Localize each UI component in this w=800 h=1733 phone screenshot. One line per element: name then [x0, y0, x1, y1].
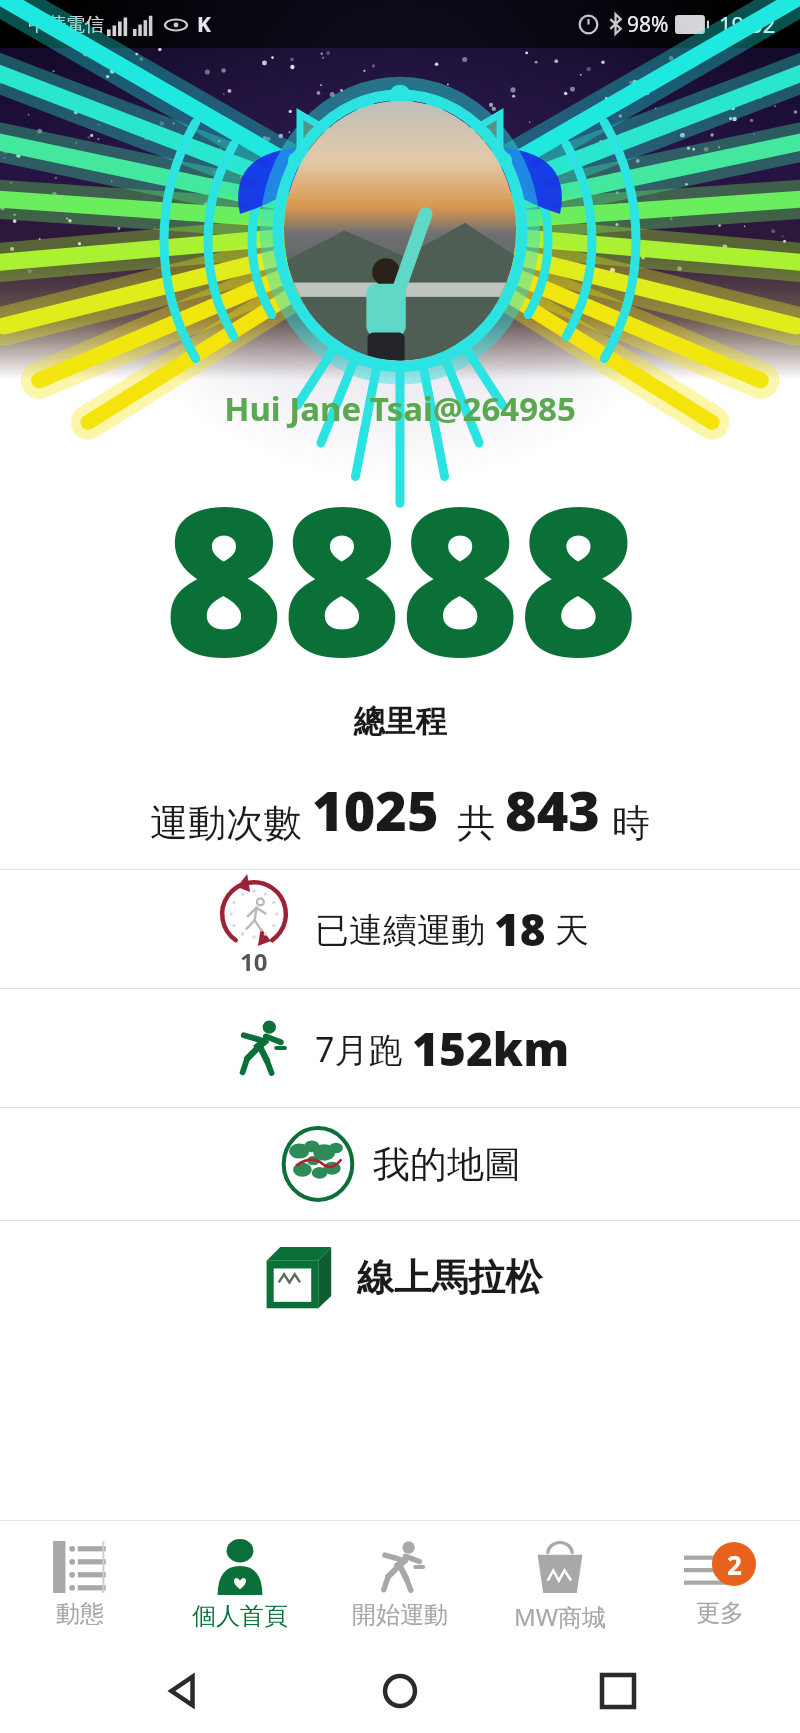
button[interactable]: Profile banner [0, 48, 800, 380]
staticText: K [197, 10, 211, 39]
staticText: 98% [627, 10, 669, 39]
staticText: 10 [240, 945, 268, 978]
staticText: 總里程 [0, 702, 800, 741]
staticText: 7月跑 [315, 1026, 412, 1072]
staticText: 2 [727, 1547, 742, 1582]
button[interactable]: 線上馬拉松 [0, 1221, 800, 1333]
button[interactable]: 2 [640, 1521, 800, 1649]
staticText: 18 [494, 899, 546, 959]
staticText: 天 [546, 906, 589, 952]
button[interactable]: 動態 [0, 1521, 160, 1649]
staticText: 時 [612, 799, 650, 847]
staticText: 19:52 [719, 9, 776, 39]
staticText: 152km [412, 1017, 570, 1080]
staticText: 開始運動 [352, 1600, 448, 1630]
button[interactable]: 開始運動 [320, 1521, 480, 1649]
button[interactable]: 10 [0, 870, 800, 988]
button[interactable]: Home [365, 1656, 435, 1726]
staticText: 8888 [0, 437, 800, 716]
staticText: 動態 [56, 1599, 104, 1629]
staticText: MW商城 [514, 1600, 607, 1633]
button[interactable]: 個人首頁 [160, 1521, 320, 1649]
staticText: 線上馬拉松 [357, 1254, 542, 1301]
button[interactable]: Back [148, 1656, 218, 1726]
staticText: 中華電信 [28, 13, 104, 37]
staticText: 我的地圖 [373, 1141, 521, 1188]
staticText: 運動次數 [150, 799, 302, 847]
staticText: Hui Jane Tsai@264985 [0, 386, 800, 431]
staticText: 1025 [312, 773, 439, 847]
button[interactable]: Recent apps [583, 1656, 653, 1726]
button[interactable]: MW商城 [480, 1521, 640, 1649]
staticText: 843 [505, 773, 600, 847]
staticText: 更多 [696, 1598, 744, 1628]
button[interactable]: 7月跑 [0, 989, 800, 1107]
staticText: 已連續運動 [315, 906, 494, 952]
staticText: 共 [457, 799, 495, 847]
staticText: 個人首頁 [192, 1601, 288, 1631]
button[interactable]: 我的地圖 [0, 1108, 800, 1220]
